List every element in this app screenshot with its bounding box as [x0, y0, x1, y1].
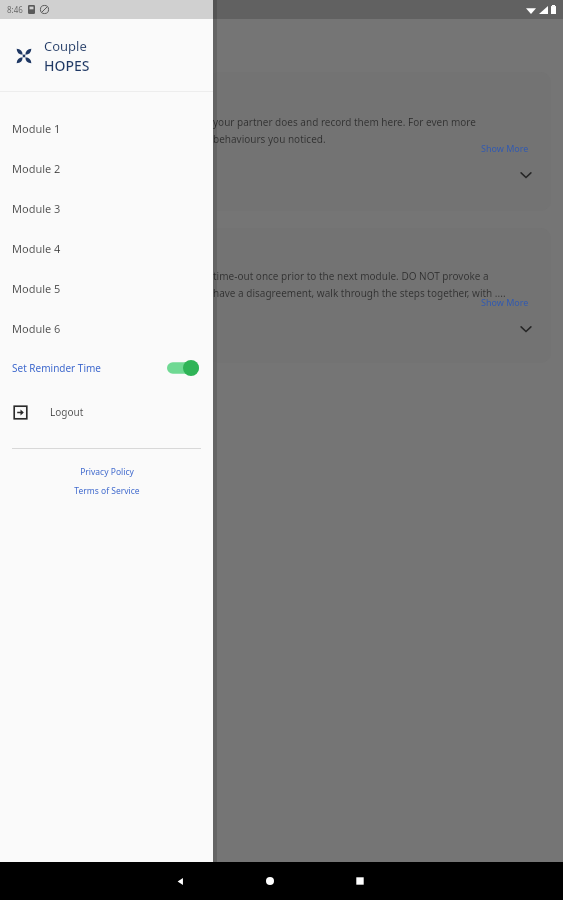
staticText: Module 5	[12, 281, 61, 296]
staticText: Privacy Policy	[80, 466, 134, 478]
button[interactable]: Home	[250, 862, 290, 900]
button[interactable]: Show More	[481, 296, 529, 308]
staticText: time-out once prior to the next module. …	[213, 269, 489, 283]
staticText: Module 3	[12, 201, 61, 216]
button[interactable]: Set Reminder Time	[0, 353, 213, 382]
button[interactable]: Reminder toggle	[167, 360, 199, 376]
staticText: Logout	[50, 405, 84, 419]
button[interactable]: Module 6	[0, 308, 213, 348]
button[interactable]: Terms of Service	[0, 481, 213, 500]
button[interactable]: Module 1	[0, 108, 213, 148]
button[interactable]	[208, 72, 551, 211]
button[interactable]: Module 3	[0, 188, 213, 228]
staticText: Module 6	[12, 321, 61, 336]
staticText: Show More	[481, 142, 529, 154]
button[interactable]: Module 2	[0, 148, 213, 188]
staticText: Module 2	[12, 161, 61, 176]
staticText: HOPES	[44, 56, 90, 75]
button[interactable]: Expand	[514, 163, 538, 187]
button[interactable]: Logout	[0, 398, 213, 426]
button[interactable]: Module 4	[0, 228, 213, 268]
staticText: Module 4	[12, 241, 61, 256]
button[interactable]: Module 5	[0, 268, 213, 308]
staticText: Terms of Service	[74, 485, 140, 497]
button[interactable]: Expand	[514, 317, 538, 341]
button[interactable]: Recents	[340, 862, 380, 900]
staticText: behaviours you noticed.	[213, 132, 326, 146]
staticText: your partner does and record them here. …	[213, 115, 476, 129]
staticText: Module 1	[12, 121, 61, 136]
staticText: Set Reminder Time	[12, 361, 101, 375]
button[interactable]: Privacy Policy	[0, 462, 213, 481]
staticText: have a disagreement, walk through the st…	[213, 286, 506, 300]
button[interactable]: Back	[160, 862, 200, 900]
staticText: 8:46	[7, 4, 23, 15]
button[interactable]: Show More	[481, 142, 529, 154]
staticText: Show More	[481, 296, 529, 308]
staticText: Couple	[44, 37, 87, 55]
button[interactable]	[208, 228, 551, 363]
